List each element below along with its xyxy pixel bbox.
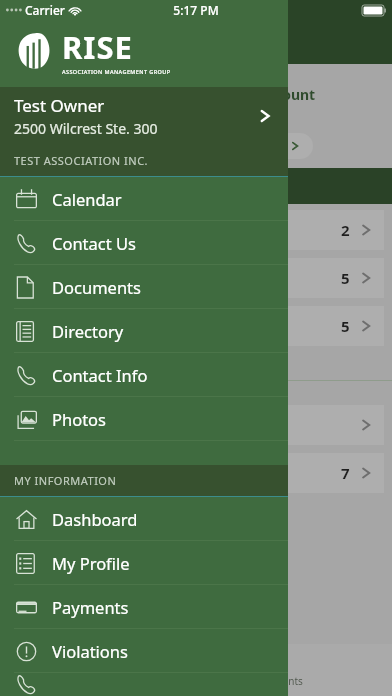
button[interactable]: 2 [100, 210, 384, 250]
staticText: Violations [52, 640, 128, 662]
button[interactable]: Dashboard [0, 497, 288, 541]
button[interactable]: Contact Info [0, 353, 288, 397]
staticText: Test Owner [14, 94, 105, 117]
staticText: RISE [62, 26, 133, 68]
staticText: 2500 Wilcrest Ste. 300 [14, 119, 158, 138]
staticText: 5 [341, 316, 350, 336]
button[interactable]: Test Owner [0, 87, 288, 145]
staticText: Add Account [227, 85, 316, 104]
staticText: 5:17 PM [173, 2, 219, 18]
staticText: 7 [341, 463, 350, 483]
staticText: Contact Us [52, 232, 136, 254]
button[interactable]: 5 [100, 258, 384, 298]
button[interactable]: Documents [0, 265, 288, 309]
staticText: Contact Info [52, 364, 148, 386]
staticText: MY INFORMATION [14, 473, 117, 488]
staticText: Documents [52, 276, 141, 298]
staticText: 2 [341, 220, 350, 240]
staticText: My Profile [52, 552, 130, 574]
button[interactable]: Photos [0, 397, 288, 441]
button[interactable]: Directory [0, 309, 288, 353]
button[interactable]: 5 [100, 306, 384, 346]
staticText: Directory [52, 320, 124, 342]
button[interactable] [100, 405, 384, 445]
staticText: 5 [341, 268, 350, 288]
staticText: Documents [249, 674, 303, 688]
button[interactable]: 7 [100, 453, 384, 493]
button[interactable]: Calendar [0, 177, 288, 221]
staticText: TEST ASSOCIATION INC. [14, 153, 149, 168]
button[interactable]: Violations [0, 629, 288, 673]
staticText: Photos [52, 408, 107, 430]
button[interactable]: Contact Us [0, 221, 288, 265]
staticText: Calendar [52, 188, 122, 210]
staticText: Carrier [25, 2, 65, 18]
button[interactable]: Payments [0, 585, 288, 629]
staticText: ASSOCIATION MANAGEMENT GROUP [62, 68, 171, 75]
button[interactable]: My Profile [0, 541, 288, 585]
staticText: Payments [52, 596, 129, 618]
staticText: Dashboard [52, 508, 138, 530]
button[interactable] [0, 673, 288, 696]
